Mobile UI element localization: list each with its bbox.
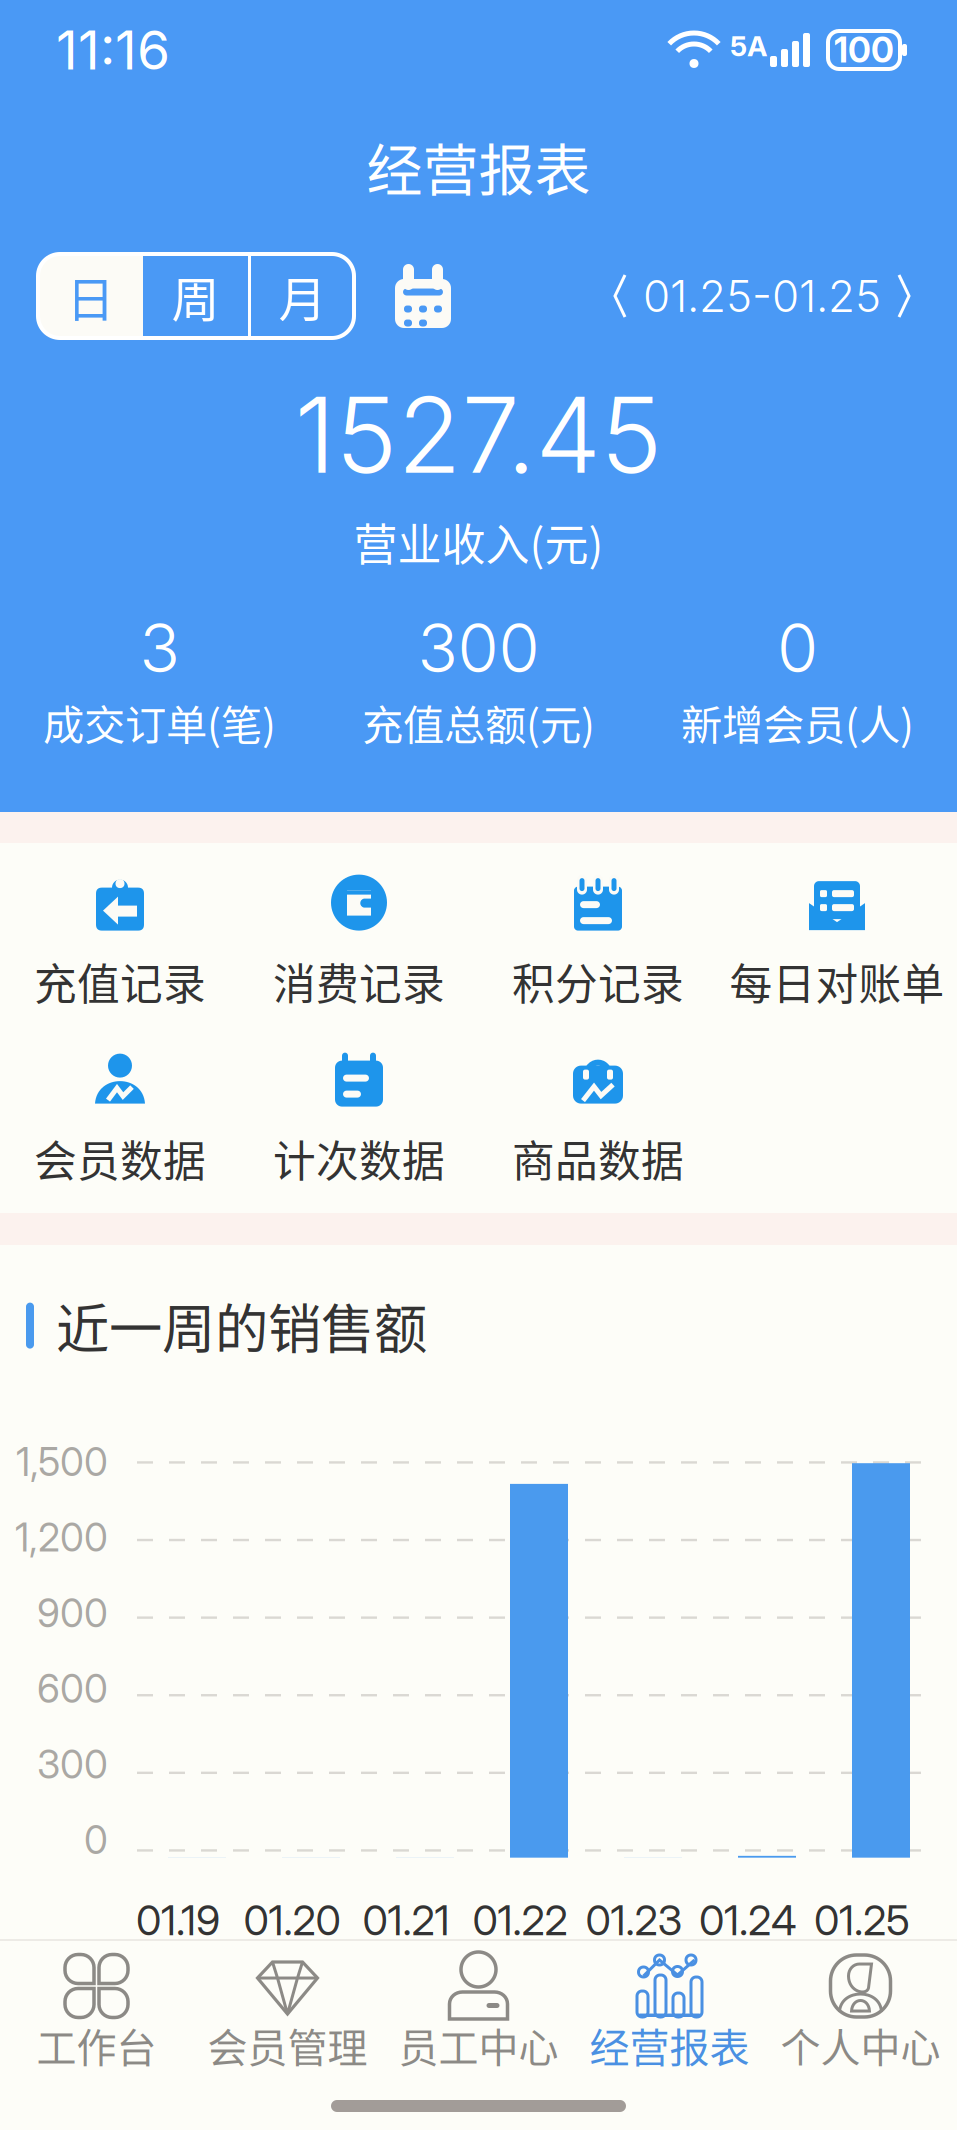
staticText: 300 bbox=[417, 607, 539, 688]
staticText: 工作台 bbox=[36, 2016, 156, 2074]
staticText: 新增会员(人) bbox=[681, 692, 914, 752]
button[interactable]: 个人中心 bbox=[765, 1941, 956, 2063]
staticText: 11:16 bbox=[56, 18, 170, 82]
button[interactable]: 周 bbox=[143, 254, 248, 338]
button[interactable]: 积分记录 bbox=[478, 879, 717, 1010]
button[interactable]: 消费记录 bbox=[239, 879, 478, 1010]
staticText: 商品数据 bbox=[512, 1128, 684, 1189]
button[interactable]: 01.25-01.25 bbox=[613, 266, 911, 326]
button[interactable]: 日 bbox=[38, 254, 143, 338]
staticText: 充值总额(元) bbox=[362, 692, 595, 752]
staticText: 日 bbox=[66, 261, 114, 331]
button[interactable]: Select date bbox=[394, 263, 452, 329]
staticText: 01.24 bbox=[699, 1895, 797, 1945]
staticText: 01.19 bbox=[136, 1895, 220, 1945]
button[interactable]: 经营报表 bbox=[574, 1941, 765, 2063]
staticText: 1,500 bbox=[16, 1438, 108, 1485]
staticText: 计次数据 bbox=[273, 1128, 445, 1189]
staticText: 100 bbox=[834, 29, 894, 71]
staticText: 300 bbox=[37, 1741, 108, 1788]
button[interactable]: 月 bbox=[251, 254, 354, 338]
staticText: 01.25-01.25 bbox=[643, 269, 881, 323]
staticText: 月 bbox=[278, 261, 326, 331]
button[interactable]: 员工中心 bbox=[383, 1941, 574, 2063]
staticText: 消费记录 bbox=[273, 951, 445, 1012]
staticText: 0 bbox=[84, 1816, 108, 1863]
staticText: 0 bbox=[777, 607, 818, 688]
staticText: 1,200 bbox=[15, 1514, 108, 1561]
staticText: 充值记录 bbox=[34, 951, 206, 1012]
button[interactable]: 计次数据 bbox=[239, 1056, 478, 1187]
button[interactable]: 会员数据 bbox=[0, 1056, 239, 1187]
staticText: 员工中心 bbox=[398, 2016, 558, 2074]
staticText: 会员管理 bbox=[207, 2016, 367, 2074]
staticText: 01.21 bbox=[362, 1895, 449, 1945]
staticText: 近一周的销售额 bbox=[56, 1287, 427, 1364]
staticText: 积分记录 bbox=[512, 951, 684, 1012]
staticText: 营业收入(元) bbox=[353, 510, 603, 573]
button[interactable]: 商品数据 bbox=[478, 1056, 717, 1187]
staticText: 经营报表 bbox=[589, 2016, 749, 2074]
staticText: 周 bbox=[171, 261, 219, 331]
staticText: 1527.45 bbox=[294, 372, 662, 498]
button[interactable]: 会员管理 bbox=[192, 1941, 383, 2063]
staticText: 600 bbox=[37, 1665, 108, 1712]
staticText: 900 bbox=[37, 1590, 108, 1636]
staticText: 01.23 bbox=[585, 1895, 682, 1945]
staticText: 个人中心 bbox=[780, 2016, 940, 2074]
staticText: 5A bbox=[730, 29, 768, 63]
staticText: 每日对账单 bbox=[729, 951, 944, 1012]
button[interactable]: 每日对账单 bbox=[717, 879, 956, 1010]
staticText: 会员数据 bbox=[34, 1128, 206, 1189]
staticText: 01.25 bbox=[814, 1895, 910, 1945]
staticText: 01.20 bbox=[243, 1895, 340, 1945]
staticText: 01.22 bbox=[472, 1895, 567, 1945]
staticText: 成交订单(笔) bbox=[43, 692, 276, 752]
button[interactable]: 充值记录 bbox=[0, 879, 239, 1010]
button[interactable]: 工作台 bbox=[1, 1941, 192, 2063]
staticText: 经营报表 bbox=[366, 125, 590, 207]
staticText: 3 bbox=[139, 607, 179, 688]
